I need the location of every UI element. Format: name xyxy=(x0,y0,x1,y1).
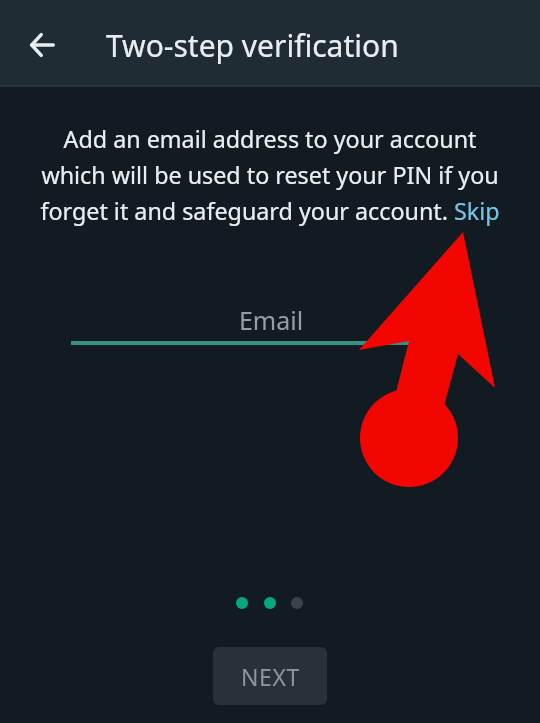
button[interactable]: Back xyxy=(17,20,67,70)
button[interactable]: Skip xyxy=(453,196,499,226)
staticText: Two-step verification xyxy=(106,25,399,66)
staticText: NEXT xyxy=(241,661,300,692)
button[interactable]: NEXT xyxy=(213,647,327,705)
staticText: Add an email address to your account whi… xyxy=(32,123,508,227)
button[interactable]: Email xyxy=(71,295,469,345)
staticText: Email xyxy=(72,303,470,337)
